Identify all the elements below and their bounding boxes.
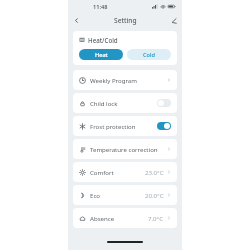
button[interactable]: Child lock bbox=[157, 99, 171, 107]
staticText: Heat/Cold bbox=[88, 36, 118, 44]
staticText: 11:48 bbox=[93, 3, 108, 11]
button[interactable]: Eco bbox=[73, 185, 177, 205]
staticText: 20.0°C bbox=[145, 191, 164, 199]
staticText: Comfort bbox=[90, 168, 114, 176]
staticText: Cold bbox=[143, 51, 155, 59]
button[interactable]: Child lock bbox=[73, 93, 177, 113]
staticText: Eco bbox=[90, 191, 100, 199]
button[interactable]: Frost protection bbox=[73, 116, 177, 136]
staticText: Setting bbox=[114, 16, 137, 25]
staticText: Weekly Program bbox=[90, 76, 137, 84]
button[interactable]: Cold bbox=[127, 49, 171, 60]
button[interactable]: Absence bbox=[73, 208, 177, 228]
staticText: Frost protection bbox=[90, 122, 136, 130]
button[interactable]: Temperature correction bbox=[73, 139, 177, 159]
staticText: Absence bbox=[90, 214, 115, 222]
staticText: 7.0°C bbox=[148, 214, 164, 222]
button[interactable]: Edit bbox=[168, 15, 179, 26]
button[interactable]: Heat bbox=[79, 49, 123, 60]
button[interactable]: Weekly Program bbox=[73, 70, 177, 90]
staticText: 23.0°C bbox=[145, 168, 164, 176]
button[interactable]: Frost protection bbox=[157, 122, 171, 130]
staticText: Heat bbox=[95, 51, 108, 59]
staticText: Temperature correction bbox=[90, 145, 158, 153]
button[interactable]: Back bbox=[71, 15, 82, 26]
button[interactable]: Comfort bbox=[73, 162, 177, 182]
staticText: Child lock bbox=[90, 99, 118, 107]
